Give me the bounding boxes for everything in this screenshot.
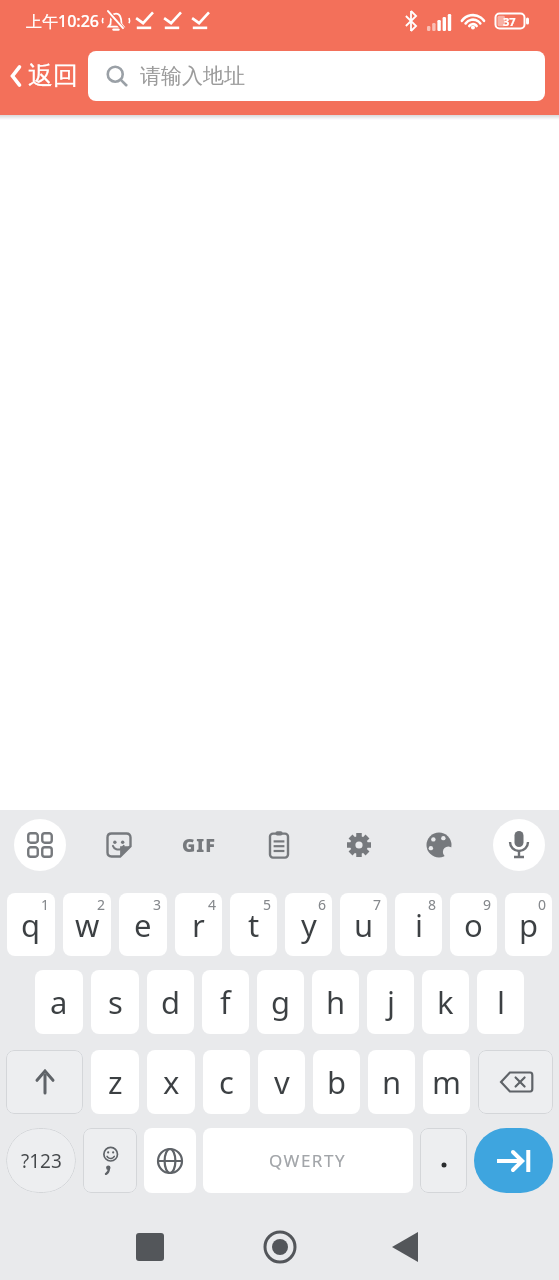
button[interactable] [479, 819, 559, 871]
staticText: 37 [503, 14, 516, 29]
button[interactable]: f [202, 970, 249, 1034]
button[interactable] [79, 819, 159, 871]
staticText: g [271, 981, 291, 1023]
staticText: h [326, 981, 346, 1023]
button[interactable]: i [395, 893, 442, 956]
button[interactable]: s [91, 970, 139, 1034]
button[interactable]: y [285, 893, 332, 956]
staticText: f [220, 981, 231, 1023]
button[interactable]: GIF [159, 819, 239, 871]
staticText: r [192, 904, 205, 946]
button[interactable] [0, 819, 79, 871]
button[interactable]: r [175, 893, 222, 956]
button[interactable]: w [63, 893, 111, 956]
staticText: t [248, 904, 260, 946]
button[interactable] [420, 1128, 467, 1193]
button[interactable]: 返回 [0, 60, 78, 91]
button[interactable] [474, 1128, 553, 1193]
staticText: 7 [373, 895, 382, 914]
staticText: w [75, 904, 100, 946]
button[interactable] [319, 819, 399, 871]
staticText: z [108, 1061, 123, 1103]
staticText: m [432, 1061, 461, 1103]
button[interactable]: l [477, 970, 524, 1034]
button[interactable]: v [258, 1050, 305, 1114]
staticText: i [415, 904, 423, 946]
staticText: e [134, 904, 152, 946]
button[interactable]: x [147, 1050, 195, 1114]
staticText: u [354, 904, 374, 946]
staticText: 请输入地址 [140, 63, 245, 89]
button[interactable]: e [119, 893, 167, 956]
button[interactable]: d [147, 970, 194, 1034]
staticText: v [274, 1061, 290, 1103]
button[interactable]: o [450, 893, 497, 956]
button[interactable]: h [312, 970, 359, 1034]
button[interactable] [0, 1193, 187, 1280]
button[interactable] [478, 1050, 553, 1114]
staticText: GIF [182, 833, 216, 858]
button[interactable]: 请输入地址 [88, 51, 545, 101]
staticText: x [163, 1061, 180, 1103]
staticText: k [437, 981, 454, 1023]
staticText: 上午10:26 [26, 10, 99, 32]
staticText: c [219, 1061, 234, 1103]
staticText: 3 [153, 895, 162, 914]
button[interactable]: p [505, 893, 552, 956]
staticText: y [301, 904, 317, 946]
staticText: 4 [208, 895, 217, 914]
button[interactable]: j [367, 970, 414, 1034]
staticText: 返回 [28, 60, 78, 91]
button[interactable]: z [91, 1050, 139, 1114]
button[interactable]: g [257, 970, 304, 1034]
staticText: 0 [538, 895, 547, 914]
staticText: o [464, 904, 483, 946]
staticText: a [50, 981, 68, 1023]
staticText: ?123 [21, 1148, 62, 1174]
button[interactable]: b [313, 1050, 360, 1114]
staticText: p [519, 904, 539, 946]
staticText: n [382, 1061, 402, 1103]
button[interactable] [144, 1128, 196, 1193]
button[interactable] [239, 819, 319, 871]
button[interactable]: QWERTY [203, 1128, 413, 1193]
button[interactable]: t [230, 893, 277, 956]
button[interactable]: ?123 [6, 1128, 76, 1193]
staticText: d [161, 981, 181, 1023]
staticText: 5 [263, 895, 272, 914]
staticText: s [108, 981, 123, 1023]
staticText: 2 [97, 895, 106, 914]
staticText: l [497, 981, 505, 1023]
staticText: 9 [483, 895, 492, 914]
staticText: 6 [318, 895, 327, 914]
button[interactable] [399, 819, 479, 871]
staticText: j [387, 981, 395, 1023]
staticText: 1 [41, 895, 50, 914]
button[interactable]: k [422, 970, 469, 1034]
staticText: b [327, 1061, 347, 1103]
button[interactable] [187, 1193, 373, 1280]
staticText: 8 [428, 895, 437, 914]
button[interactable]: n [368, 1050, 415, 1114]
staticText: q [21, 904, 41, 946]
button[interactable]: c [203, 1050, 250, 1114]
button[interactable]: q [7, 893, 55, 956]
button[interactable] [373, 1193, 559, 1280]
button[interactable]: m [423, 1050, 470, 1114]
button[interactable] [83, 1128, 137, 1193]
staticText: QWERTY [269, 1149, 347, 1172]
button[interactable] [6, 1050, 83, 1114]
button[interactable]: u [340, 893, 387, 956]
button[interactable]: a [35, 970, 83, 1034]
